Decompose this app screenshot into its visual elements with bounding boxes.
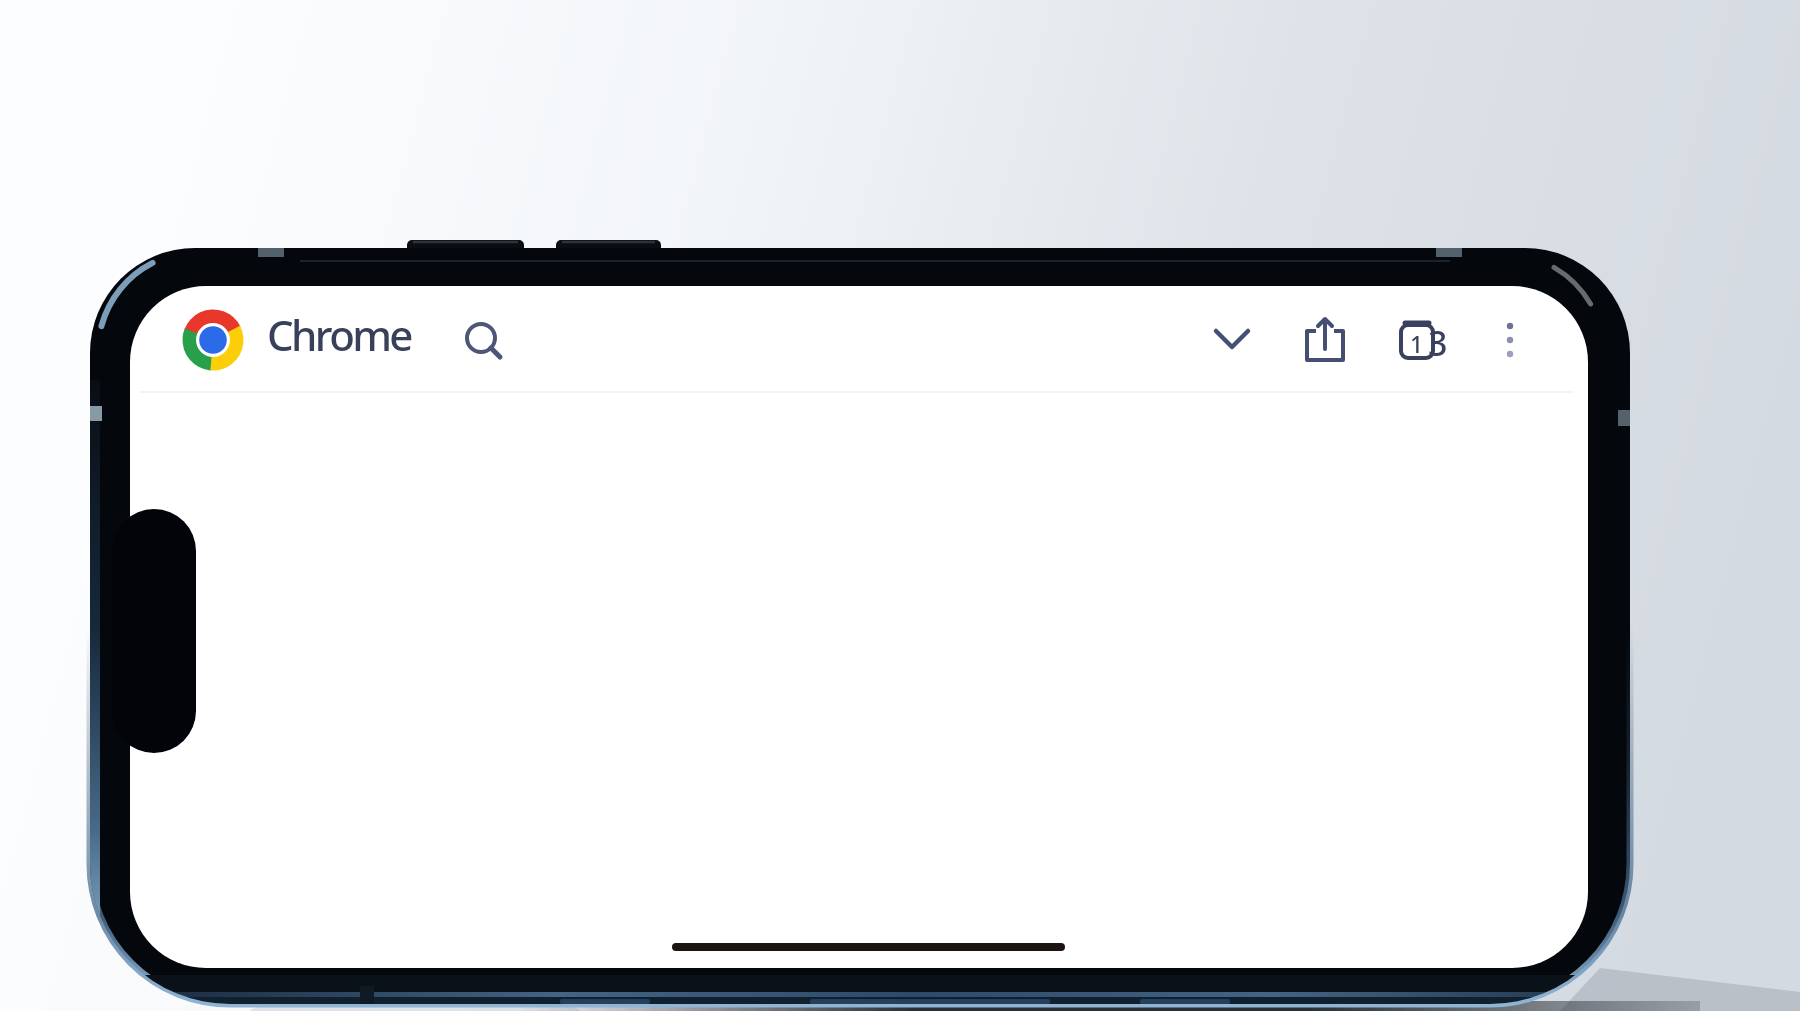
staticText: Chrome [267,306,411,363]
button[interactable] [672,935,1065,959]
button[interactable] [1206,313,1258,365]
button[interactable] [1391,313,1443,365]
staticText: 3 [1428,320,1448,366]
button[interactable] [182,309,412,371]
button[interactable] [1299,313,1351,365]
button[interactable] [1484,313,1536,365]
button[interactable] [455,313,507,365]
staticText: 1 [1410,328,1424,359]
